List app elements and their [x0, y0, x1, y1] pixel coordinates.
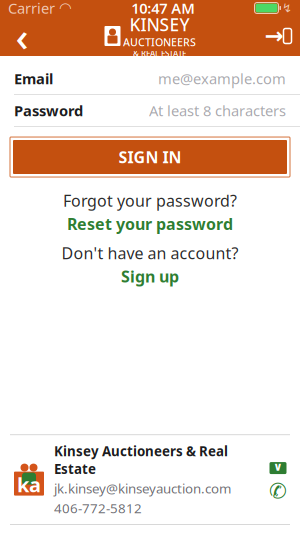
staticText: ↯ — [282, 1, 292, 15]
staticText: 10:47 AM — [131, 0, 195, 18]
staticText: AUCTIONEERS — [123, 35, 196, 49]
staticText: me@example.com — [158, 69, 286, 88]
button[interactable]: Reset your password — [63, 212, 237, 235]
button[interactable]: Sign in — [256, 16, 300, 56]
staticText: ✆ — [269, 479, 287, 503]
button[interactable]: Sign up — [117, 265, 183, 288]
button[interactable]: Email — [268, 460, 288, 476]
button[interactable]: Call — [268, 483, 288, 499]
staticText: ∨ — [273, 460, 283, 473]
staticText: Sign up — [121, 266, 179, 287]
staticText: Reset your password — [67, 213, 233, 234]
staticText: jk.kinsey@kinseyauction.com — [54, 480, 231, 497]
staticText: Don't have an account? — [61, 242, 238, 264]
staticText: 406-772-5812 — [54, 499, 142, 517]
staticText: KINSEY — [129, 13, 189, 36]
button[interactable]: Back — [0, 16, 44, 56]
staticText: At least 8 characters — [149, 101, 286, 120]
staticText: ‹ — [15, 9, 28, 62]
staticText: ◠ — [59, 0, 72, 16]
staticText: Password — [14, 101, 83, 120]
staticText: SIGN IN — [118, 146, 181, 168]
staticText: Carrier — [8, 0, 55, 18]
staticText: Forgot your password? — [63, 190, 237, 211]
staticText: ka — [17, 471, 41, 498]
staticText: Email — [14, 69, 53, 88]
staticText: Kinsey Auctioneers & Real Estate — [54, 442, 228, 478]
staticText: & REAL ESTATE — [133, 48, 186, 59]
button[interactable]: SIGN IN — [10, 137, 290, 177]
staticText: → — [264, 23, 283, 49]
